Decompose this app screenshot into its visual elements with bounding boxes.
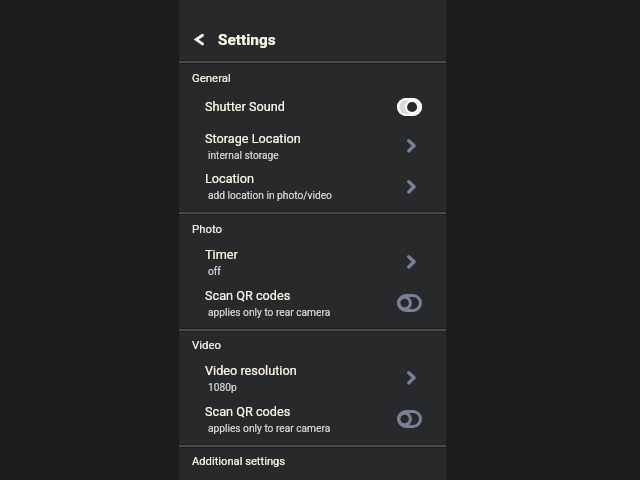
- staticText: Additional settings: [192, 455, 286, 468]
- staticText: Shutter Sound: [205, 99, 285, 114]
- staticText: General: [192, 71, 231, 84]
- staticText: Scan QR codes: [205, 288, 291, 303]
- staticText: Settings: [218, 31, 276, 49]
- staticText: Storage Location: [205, 131, 301, 146]
- button[interactable]: Timer: [179, 242, 446, 283]
- staticText: applies only to rear camera: [208, 423, 331, 435]
- staticText: Timer: [205, 247, 238, 262]
- button[interactable]: Navigate up: [181, 22, 216, 57]
- staticText: off: [208, 266, 221, 278]
- staticText: applies only to rear camera: [208, 307, 331, 319]
- button[interactable]: Scan QR codes: [179, 283, 446, 324]
- button[interactable]: Location: [179, 167, 446, 208]
- staticText: add location in photo/video: [208, 190, 332, 202]
- button[interactable]: Storage Location: [179, 126, 446, 167]
- staticText: Video: [192, 338, 221, 351]
- button[interactable]: Shutter Sound: [179, 94, 446, 126]
- staticText: Scan QR codes: [205, 404, 291, 419]
- staticText: Photo: [192, 222, 223, 235]
- staticText: 1080p: [208, 382, 237, 394]
- button[interactable]: Scan QR codes: [179, 399, 446, 440]
- button[interactable]: Video resolution: [179, 358, 446, 399]
- staticText: Video resolution: [205, 363, 297, 378]
- staticText: Location: [205, 171, 255, 186]
- staticText: internal storage: [208, 150, 279, 162]
- button[interactable]: Additional settings: [179, 444, 446, 480]
